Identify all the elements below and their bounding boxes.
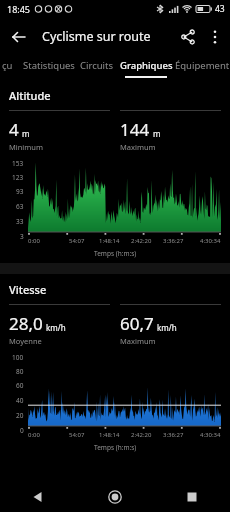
button[interactable]: Home xyxy=(76,482,153,512)
staticText: Maximum xyxy=(120,336,156,346)
staticText: 54:07 xyxy=(69,431,85,439)
staticText: 33 xyxy=(16,217,24,226)
staticText: 123 xyxy=(12,173,24,182)
staticText: 60 xyxy=(16,381,24,390)
button[interactable]: Circuits xyxy=(76,55,118,80)
button[interactable]: 28,0 xyxy=(9,304,110,346)
staticText: 80 xyxy=(16,367,24,376)
staticText: Minimum xyxy=(9,142,43,152)
staticText: Équipement xyxy=(175,59,230,72)
staticText: km/h xyxy=(46,322,66,333)
button[interactable]: Share xyxy=(174,23,202,51)
staticText: Vitesse xyxy=(9,282,47,297)
button[interactable]: Back xyxy=(4,22,34,52)
staticText: 60,7 xyxy=(120,312,154,335)
button[interactable]: 4 xyxy=(9,110,110,152)
staticText: 2:42:20 xyxy=(131,431,152,439)
staticText: Temps (h:m:s) xyxy=(94,249,137,258)
staticText: Temps (h:m:s) xyxy=(94,443,137,452)
staticText: 20 xyxy=(16,411,24,420)
button[interactable]: Recent apps xyxy=(153,482,230,512)
staticText: 153 xyxy=(12,159,24,168)
staticText: 0:00 xyxy=(28,237,40,245)
staticText: 2:42:20 xyxy=(131,237,152,245)
staticText: 18:45 xyxy=(7,3,31,15)
staticText: Statistiques xyxy=(23,59,75,72)
button[interactable]: Back xyxy=(0,482,76,512)
staticText: 100 xyxy=(12,353,24,362)
staticText: Cyclisme sur route xyxy=(42,28,151,45)
staticText: 4:30:34 xyxy=(200,237,221,245)
staticText: 28,0 xyxy=(9,312,43,335)
staticText: km/h xyxy=(157,322,177,333)
staticText: 1:48:14 xyxy=(99,237,120,245)
staticText: 0:00 xyxy=(28,431,40,439)
staticText: 3 xyxy=(20,232,24,241)
staticText: m xyxy=(22,128,30,139)
staticText: 93 xyxy=(16,187,24,196)
button[interactable]: çu xyxy=(0,55,22,80)
staticText: Moyenne xyxy=(9,336,42,346)
staticText: 4 xyxy=(9,118,19,141)
staticText: Altitude xyxy=(9,88,51,103)
staticText: çu xyxy=(2,59,13,72)
staticText: 0 xyxy=(20,426,24,435)
staticText: Circuits xyxy=(80,59,114,72)
button[interactable]: Équipement xyxy=(174,55,230,80)
staticText: 54:07 xyxy=(69,237,85,245)
button[interactable]: More options xyxy=(202,24,228,50)
staticText: 3:36:27 xyxy=(163,237,184,245)
button[interactable]: 60,7 xyxy=(120,304,221,346)
staticText: 40 xyxy=(16,396,24,405)
staticText: Maximum xyxy=(120,142,156,152)
staticText: 144 xyxy=(120,118,150,141)
staticText: 43 xyxy=(215,3,225,15)
staticText: 63 xyxy=(16,202,24,211)
staticText: 1:48:14 xyxy=(99,431,120,439)
button[interactable]: 144 xyxy=(120,110,221,152)
staticText: 3:36:27 xyxy=(163,431,184,439)
staticText: m xyxy=(153,128,161,139)
staticText: Graphiques xyxy=(120,59,173,72)
button[interactable]: Statistiques xyxy=(22,55,76,80)
button[interactable]: Graphiques xyxy=(118,55,174,80)
staticText: 4:30:34 xyxy=(200,431,221,439)
